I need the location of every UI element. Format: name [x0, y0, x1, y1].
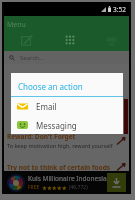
button[interactable]: Messaging — [11, 116, 123, 134]
button[interactable]: Compose — [19, 33, 33, 47]
staticText: ★★★★★ — [42, 185, 67, 191]
button[interactable]: Reward: Don't Forget — [4, 130, 129, 151]
staticText: Try not to think of certain foods as — [7, 163, 116, 172]
other: Share — [116, 162, 126, 172]
staticText: 3:52 — [113, 5, 126, 14]
staticText: Messaging — [36, 120, 77, 131]
button[interactable]: Email — [11, 97, 123, 116]
staticText: Choose an action — [18, 81, 83, 92]
button[interactable]: Settings — [104, 34, 118, 48]
staticText: Search... — [20, 54, 44, 62]
staticText: FREE — [28, 184, 40, 191]
staticText: (46,772) — [69, 184, 88, 191]
other: Share — [116, 136, 126, 146]
button[interactable]: Apps — [63, 33, 77, 47]
staticText: Menu — [7, 20, 26, 30]
button[interactable]: Try not to think of certain foods as — [4, 160, 129, 174]
button[interactable]: Install — [107, 173, 126, 192]
staticText: Email — [36, 101, 57, 112]
button[interactable]: Kuis Millionaire Indonesia — [4, 171, 129, 194]
staticText: To keep motivation high, reward yourself — [7, 142, 113, 149]
button[interactable]: Search... — [4, 51, 129, 64]
staticText: Kuis Millionaire Indonesia — [28, 174, 107, 183]
staticText: Reward: Don't Forget — [7, 132, 76, 141]
